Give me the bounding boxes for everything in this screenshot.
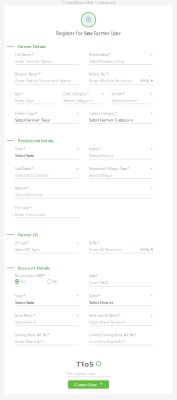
staticText: Bank Name [15, 313, 33, 318]
staticText: Enter Bank A/C [15, 339, 45, 344]
staticText: Age [15, 92, 21, 96]
staticText: * [128, 167, 130, 171]
staticText: Enter Pin Code [15, 211, 45, 217]
staticText: State [15, 294, 23, 298]
staticText: Select District [89, 153, 113, 158]
staticText: Select Address [15, 192, 43, 197]
staticText: Relative Name [15, 72, 38, 76]
staticText: District [89, 147, 98, 151]
staticText: Mobile No. [89, 72, 106, 76]
staticText: Residential Details [18, 138, 54, 143]
staticText: Pin Code [15, 206, 29, 210]
staticText: Select Category [63, 97, 92, 103]
button[interactable]: Farmer Type [15, 111, 79, 130]
staticText: Verify [140, 247, 149, 251]
staticText: T1o5 [76, 359, 93, 369]
button[interactable]: ID Type [15, 240, 79, 260]
button[interactable]: Refresh captcha [96, 362, 101, 366]
staticText: Verify [140, 79, 149, 83]
staticText: * [116, 111, 118, 116]
staticText: PAN [89, 274, 95, 278]
button[interactable]: ID No [89, 240, 153, 260]
staticText: Select State [15, 153, 34, 158]
staticText: * [87, 92, 89, 96]
staticText: Enter Farmer Name [15, 58, 52, 64]
staticText: * [34, 313, 36, 318]
button[interactable]: Age [15, 91, 56, 111]
staticText: Savings Bank A/C No [15, 333, 47, 337]
staticText: Select State [15, 299, 34, 305]
staticText: * [24, 147, 26, 151]
button[interactable]: Create User [68, 380, 109, 389]
button[interactable]: State [15, 146, 79, 166]
staticText: Caste Category [63, 92, 86, 96]
staticText: * [119, 313, 121, 318]
button[interactable]: Pin Code [15, 205, 79, 225]
staticText: Gender [112, 92, 123, 96]
staticText: Register for New Farmer User [56, 30, 121, 37]
staticText: Select ID Type [15, 247, 40, 252]
staticText: Create User [74, 382, 97, 387]
staticText: Account Details [18, 265, 50, 271]
staticText: Select Village [89, 172, 112, 178]
button[interactable]: Savings Bank A/C No [15, 332, 79, 352]
staticText: * [27, 186, 29, 190]
button[interactable]: Confirm Savings Bank A/C No [89, 332, 153, 352]
button[interactable]: Relationship [89, 52, 153, 71]
button[interactable]: PAN [89, 273, 153, 293]
staticText: Enter Captcha Code [65, 372, 95, 376]
staticText: Select Farmer Type [15, 117, 50, 123]
staticText: Address [15, 186, 26, 190]
staticText: * [48, 333, 50, 337]
staticText: Select Farmer Category [89, 117, 133, 123]
staticText: * [99, 294, 101, 298]
staticText: Residential Village/ Town [89, 167, 127, 171]
staticText: District [89, 294, 98, 298]
staticText: Full Name [15, 53, 31, 57]
staticText: * [96, 274, 98, 278]
button[interactable]: Bank Branch Name [89, 313, 153, 332]
staticText: ID No [89, 241, 97, 245]
button[interactable]: Sub-District [15, 166, 79, 185]
button[interactable]: Yes [15, 279, 26, 283]
button[interactable]: Full Name [15, 52, 79, 71]
button[interactable]: District [89, 293, 153, 313]
staticText: * [22, 92, 24, 96]
staticText: * [99, 147, 101, 151]
button[interactable]: Gender [112, 91, 153, 111]
staticText: Enter PAN [89, 280, 108, 285]
button[interactable]: District [89, 146, 153, 166]
staticText: * [32, 53, 34, 57]
staticText: * [24, 294, 26, 298]
staticText: Enter Age [15, 97, 34, 103]
button[interactable]: Relative Name [15, 71, 79, 91]
staticText: Farmer Details [18, 43, 46, 49]
staticText: Enter ID Number [89, 247, 122, 252]
button[interactable]: Mobile No. [89, 71, 153, 91]
staticText: + [100, 381, 103, 388]
staticText: * [135, 333, 137, 337]
staticText: * [107, 72, 109, 76]
button[interactable]: No [47, 279, 57, 283]
staticText: Confirm Savings Bank A/C No [89, 333, 134, 337]
button[interactable]: Caste Category [63, 91, 105, 111]
button[interactable]: Residential Village/ Town [89, 166, 153, 185]
staticText: Relationship [89, 53, 108, 57]
button[interactable]: State [15, 293, 79, 313]
staticText: Sub-District [15, 167, 31, 171]
staticText: Confirm Bank A/C [89, 339, 126, 344]
button[interactable]: Bank Name [15, 313, 79, 332]
staticText: * [123, 92, 125, 96]
staticText: Enter Father/Husband Name [15, 78, 71, 83]
staticText: Enter Mobile Number [89, 78, 132, 83]
button[interactable]: Address [15, 185, 153, 205]
staticText: Yes [21, 279, 26, 283]
staticText: * [39, 72, 41, 76]
staticText: ID Type [15, 241, 27, 245]
staticText: * [28, 241, 30, 245]
button[interactable]: Farmer Category [89, 111, 153, 130]
staticText: * [36, 111, 38, 116]
staticText: Select Bank Branch [89, 319, 126, 325]
staticText: * [109, 53, 111, 57]
staticText: State [15, 147, 23, 151]
